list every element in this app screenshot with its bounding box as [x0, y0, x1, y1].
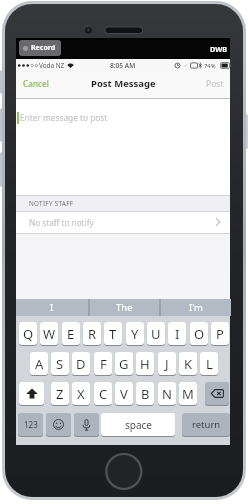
button[interactable]: I'm — [161, 299, 231, 316]
staticText: Y — [131, 325, 139, 343]
staticText: D — [76, 355, 86, 373]
staticText: No staff to notify — [29, 217, 94, 228]
staticText: 8:05 AM — [110, 61, 136, 70]
button[interactable]: R — [83, 322, 101, 345]
staticText: S — [56, 355, 64, 373]
button[interactable]: space — [101, 413, 175, 436]
button[interactable] — [46, 413, 71, 436]
button[interactable]: L — [200, 352, 218, 375]
button[interactable]: A — [30, 352, 48, 375]
button[interactable]: C — [94, 382, 112, 405]
button[interactable]: P — [211, 322, 229, 345]
staticText: V — [120, 385, 128, 403]
button[interactable]: T — [104, 322, 122, 345]
staticText: Cancel — [23, 78, 49, 89]
staticText: Voda NZ — [39, 61, 65, 70]
button[interactable]: K — [179, 352, 197, 375]
staticText: I — [50, 301, 54, 314]
staticText: space — [125, 418, 152, 432]
button[interactable]: Q — [19, 322, 37, 345]
staticText: L — [206, 355, 213, 373]
button[interactable]: U — [147, 322, 165, 345]
staticText: M — [182, 385, 194, 403]
staticText: C — [99, 385, 108, 403]
button[interactable]: I — [16, 299, 88, 316]
staticText: E — [67, 325, 75, 343]
button[interactable]: Record — [19, 40, 61, 56]
button[interactable]: H — [136, 352, 154, 375]
staticText: Q — [23, 325, 34, 343]
staticText: P — [216, 325, 224, 343]
staticText: A — [35, 355, 44, 373]
button[interactable]: G — [115, 352, 133, 375]
button[interactable] — [16, 211, 230, 233]
button[interactable]: J — [158, 352, 176, 375]
staticText: H — [140, 355, 150, 373]
button[interactable]: E — [62, 322, 80, 345]
staticText: Record — [31, 43, 56, 53]
staticText: 74% — [204, 62, 216, 70]
button[interactable] — [19, 382, 44, 405]
staticText: O — [194, 325, 205, 343]
staticText: 123 — [24, 419, 38, 430]
staticText: Enter message to post — [20, 112, 108, 123]
staticText: X — [77, 385, 85, 403]
button[interactable]: S — [51, 352, 69, 375]
staticText: I — [175, 325, 180, 343]
staticText: K — [184, 355, 193, 373]
staticText: R — [88, 325, 97, 343]
button[interactable]: return — [182, 413, 230, 436]
button[interactable]: The — [90, 299, 159, 316]
button[interactable]: Post — [200, 72, 224, 95]
staticText: Z — [56, 385, 64, 403]
staticText: Post — [206, 78, 224, 90]
button[interactable]: I — [168, 322, 186, 345]
staticText: DWB — [210, 44, 228, 54]
button[interactable]: O — [190, 322, 208, 345]
staticText: Post Message — [91, 77, 156, 90]
button[interactable]: W — [40, 322, 58, 345]
button[interactable] — [205, 382, 229, 405]
button[interactable]: Cancel — [23, 72, 53, 95]
button[interactable]: N — [158, 382, 176, 405]
staticText: F — [100, 355, 107, 373]
staticText: N — [162, 385, 172, 403]
button[interactable]: M — [179, 382, 197, 405]
staticText: The — [116, 301, 133, 314]
button[interactable]: Z — [51, 382, 69, 405]
button[interactable] — [16, 99, 230, 195]
button[interactable]: F — [94, 352, 112, 375]
button[interactable]: V — [115, 382, 133, 405]
staticText: B — [141, 385, 150, 403]
staticText: return — [192, 418, 221, 431]
button[interactable]: D — [72, 352, 90, 375]
button[interactable]: 123 — [18, 413, 43, 436]
staticText: NOTIFY STAFF — [29, 199, 74, 208]
button[interactable]: B — [136, 382, 154, 405]
staticText: W — [43, 325, 56, 343]
button[interactable]: X — [72, 382, 90, 405]
staticText: J — [165, 355, 169, 373]
button[interactable] — [74, 413, 99, 436]
button[interactable]: Y — [126, 322, 144, 345]
staticText: G — [119, 355, 129, 373]
staticText: I'm — [189, 301, 203, 314]
staticText: U — [151, 325, 161, 343]
staticText: T — [109, 325, 117, 343]
